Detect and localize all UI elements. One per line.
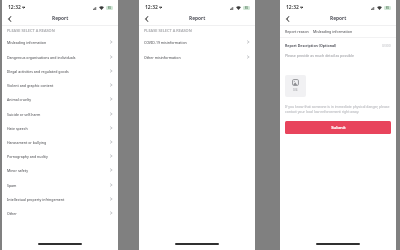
staticText: COVID-19 misinformation — [144, 40, 187, 45]
button[interactable]: Back — [5, 14, 14, 23]
staticText: 0/4 — [293, 88, 298, 92]
staticText: Minor safety — [7, 168, 29, 173]
staticText: Report — [189, 15, 206, 22]
staticText: 12:32 — [8, 4, 21, 11]
button[interactable]: Submit — [285, 121, 391, 134]
button[interactable]: Other misinformation — [139, 50, 255, 64]
staticText: Report — [330, 15, 347, 22]
staticText: PLEASE SELECT A REASON — [7, 28, 55, 33]
staticText: Submit — [331, 125, 346, 131]
staticText: 85 — [245, 6, 248, 10]
staticText: Spam — [7, 183, 17, 188]
staticText: Other — [7, 211, 17, 216]
button[interactable]: Intellectual property infringement — [2, 192, 118, 206]
staticText: 85 — [386, 6, 389, 10]
button[interactable]: Pornography and nudity — [2, 149, 118, 163]
staticText: 12:32 — [145, 4, 158, 11]
staticText: Report reason — [285, 29, 309, 34]
staticText: Misleading information — [7, 40, 47, 45]
staticText: Please provide as much detail as possibl… — [285, 53, 354, 58]
button[interactable]: Report reason — [285, 26, 391, 37]
button[interactable]: Violent and graphic content — [2, 78, 118, 92]
staticText: 85 — [108, 6, 111, 10]
button[interactable]: Suicide or self-harm — [2, 107, 118, 121]
staticText: Pornography and nudity — [7, 154, 48, 159]
button[interactable]: Illegal activities and regulated goods — [2, 64, 118, 78]
button[interactable]: Add photo — [285, 75, 306, 97]
button[interactable]: Minor safety — [2, 163, 118, 177]
staticText: Animal cruelty — [7, 97, 32, 102]
staticText: Violent and graphic content — [7, 83, 54, 88]
staticText: Report Description (Optional) — [285, 43, 337, 48]
staticText: If you know that someone is in immediate… — [285, 104, 392, 114]
button[interactable]: Dangerous organisations and individuals — [2, 50, 118, 64]
staticText: 12:32 — [286, 4, 299, 11]
staticText: Hate speech — [7, 126, 28, 131]
button[interactable]: Harassment or bullying — [2, 135, 118, 149]
staticText: Misleading information — [313, 29, 353, 34]
button[interactable]: Animal cruelty — [2, 92, 118, 106]
staticText: PLEASE SELECT A REASON — [144, 28, 192, 33]
staticText: Intellectual property infringement — [7, 197, 65, 202]
button[interactable]: Hate speech — [2, 121, 118, 135]
staticText: Suicide or self-harm — [7, 112, 41, 117]
button[interactable]: COVID-19 misinformation — [139, 35, 255, 49]
staticText: Illegal activities and regulated goods — [7, 69, 69, 74]
staticText: Other misinformation — [144, 55, 181, 60]
button[interactable]: Spam — [2, 178, 118, 192]
staticText: Report — [52, 15, 69, 22]
button[interactable]: Back — [283, 14, 292, 23]
staticText: Harassment or bullying — [7, 140, 47, 145]
button[interactable]: Misleading information — [2, 35, 118, 49]
staticText: 0/300 — [382, 44, 391, 48]
staticText: Dangerous organisations and individuals — [7, 55, 76, 60]
button[interactable]: Back — [142, 14, 151, 23]
button[interactable]: Other — [2, 206, 118, 220]
